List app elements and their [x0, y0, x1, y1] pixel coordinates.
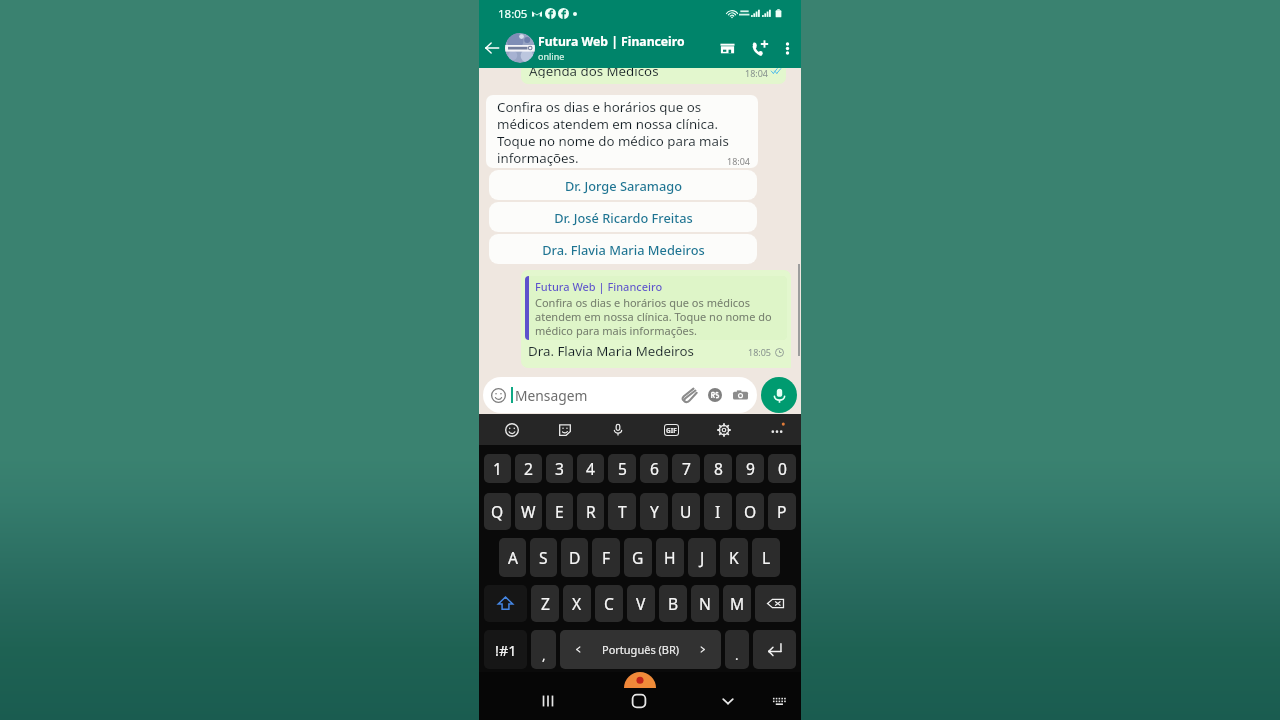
- button[interactable]: Voice message: [761, 377, 797, 413]
- staticText: Q: [491, 501, 504, 522]
- button[interactable]: 0: [768, 454, 796, 483]
- button[interactable]: R: [577, 493, 604, 530]
- staticText: F: [602, 547, 611, 568]
- button[interactable]: Confira os dias e horários que os médico…: [486, 95, 758, 168]
- button[interactable]: Z: [531, 585, 559, 622]
- staticText: I: [715, 501, 721, 522]
- staticText: X: [572, 593, 582, 614]
- staticText: 2: [524, 458, 533, 479]
- button[interactable]: Dra. Flavia Maria Medeiros: [489, 234, 757, 264]
- staticText: 18:05: [498, 6, 528, 22]
- staticText: ,: [542, 646, 546, 664]
- staticText: M: [730, 593, 745, 614]
- button[interactable]: Dr. José Ricardo Freitas: [489, 202, 757, 232]
- button[interactable]: !#1: [484, 630, 527, 669]
- button[interactable]: Voice input: [606, 418, 630, 442]
- button[interactable]: Hide keyboard: [711, 684, 745, 718]
- button[interactable]: Keyboard layout: [763, 684, 797, 718]
- button[interactable]: F: [592, 538, 620, 577]
- button[interactable]: Home: [622, 684, 656, 718]
- button[interactable]: 5: [608, 454, 636, 483]
- button[interactable]: Stickers: [553, 418, 577, 442]
- button[interactable]: P: [768, 493, 796, 530]
- button[interactable]: Futura Web | Financeiro: [521, 270, 791, 368]
- button[interactable]: A: [499, 538, 526, 577]
- button[interactable]: More: [765, 418, 789, 442]
- staticText: 18:05: [748, 346, 772, 358]
- button[interactable]: T: [608, 493, 636, 530]
- button[interactable]: 7: [672, 454, 700, 483]
- staticText: 6: [650, 458, 659, 479]
- button[interactable]: 4: [577, 454, 604, 483]
- staticText: Y: [650, 501, 659, 522]
- button[interactable]: GIF: [659, 418, 683, 442]
- button[interactable]: E: [546, 493, 573, 530]
- button[interactable]: Recent apps: [531, 684, 565, 718]
- button[interactable]: O: [736, 493, 764, 530]
- button[interactable]: ,: [531, 630, 556, 669]
- button[interactable]: B: [659, 585, 687, 622]
- staticText: Confira os dias e horários que os médico…: [535, 295, 774, 338]
- button[interactable]: Backspace: [755, 585, 796, 622]
- button[interactable]: Q: [484, 493, 511, 530]
- button[interactable]: C: [595, 585, 623, 622]
- button[interactable]: J: [688, 538, 716, 577]
- button[interactable]: Settings: [712, 418, 736, 442]
- staticText: B: [668, 593, 679, 614]
- button[interactable]: 8: [704, 454, 732, 483]
- button[interactable]: W: [515, 493, 542, 530]
- button[interactable]: Back: [480, 36, 504, 60]
- staticText: K: [729, 547, 739, 568]
- button[interactable]: Shift: [484, 585, 527, 622]
- button[interactable]: K: [720, 538, 748, 577]
- button[interactable]: S: [530, 538, 557, 577]
- staticText: V: [636, 593, 646, 614]
- staticText: 1: [493, 458, 502, 479]
- staticText: J: [700, 547, 705, 568]
- staticText: Z: [541, 593, 550, 614]
- button[interactable]: G: [624, 538, 652, 577]
- staticText: GIF: [666, 426, 677, 435]
- button[interactable]: Emoji: [500, 418, 524, 442]
- button[interactable]: 2: [515, 454, 542, 483]
- staticText: 3: [555, 458, 564, 479]
- button[interactable]: M: [723, 585, 751, 622]
- staticText: Dr. José Ricardo Freitas: [554, 209, 693, 226]
- button[interactable]: Business catalog: [712, 33, 742, 63]
- staticText: 18:04: [727, 155, 751, 167]
- button[interactable]: Y: [640, 493, 668, 530]
- button[interactable]: .: [725, 630, 749, 669]
- button[interactable]: 6: [640, 454, 668, 483]
- button[interactable]: Call: [745, 33, 775, 63]
- button[interactable]: Futura Web | Financeiro: [505, 27, 712, 68]
- staticText: 0: [778, 458, 787, 479]
- button[interactable]: Enter: [753, 630, 796, 669]
- button[interactable]: 9: [736, 454, 764, 483]
- staticText: Futura Web | Financeiro: [535, 279, 663, 294]
- button[interactable]: 1: [484, 454, 511, 483]
- button[interactable]: V: [627, 585, 655, 622]
- button[interactable]: Dr. Jorge Saramago: [489, 170, 757, 200]
- button[interactable]: D: [561, 538, 588, 577]
- button[interactable]: N: [691, 585, 719, 622]
- button[interactable]: U: [672, 493, 700, 530]
- staticText: R: [586, 501, 596, 522]
- button[interactable]: More options: [776, 37, 798, 59]
- button[interactable]: X: [563, 585, 591, 622]
- button[interactable]: L: [752, 538, 780, 577]
- staticText: online: [538, 50, 565, 62]
- staticText: S: [539, 547, 548, 568]
- staticText: 8: [714, 458, 723, 479]
- button[interactable]: Português (BR): [560, 630, 721, 669]
- staticText: G: [632, 547, 644, 568]
- staticText: U: [680, 501, 692, 522]
- staticText: 9: [746, 458, 755, 479]
- staticText: Português (BR): [602, 642, 680, 657]
- button[interactable]: H: [656, 538, 684, 577]
- button[interactable]: 3: [546, 454, 573, 483]
- button[interactable]: I: [704, 493, 732, 530]
- staticText: P: [777, 501, 787, 522]
- staticText: D: [569, 547, 581, 568]
- staticText: 4: [586, 458, 595, 479]
- button[interactable]: Mensagem: [483, 377, 757, 413]
